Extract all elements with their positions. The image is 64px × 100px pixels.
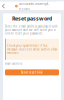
staticText: Enter the email address associated with … (5, 25, 58, 35)
staticText: Check your spam folder if the message do… (7, 44, 57, 55)
staticText: Send reset link (21, 71, 43, 74)
button[interactable]: Address (15, 2, 49, 11)
button[interactable]: Send reset link (5, 69, 59, 75)
staticText: Reset password (12, 15, 52, 22)
button[interactable]: Back (0, 2, 7, 11)
staticText: accounts.example.com (19, 1, 49, 11)
staticText: Email address (5, 62, 22, 65)
